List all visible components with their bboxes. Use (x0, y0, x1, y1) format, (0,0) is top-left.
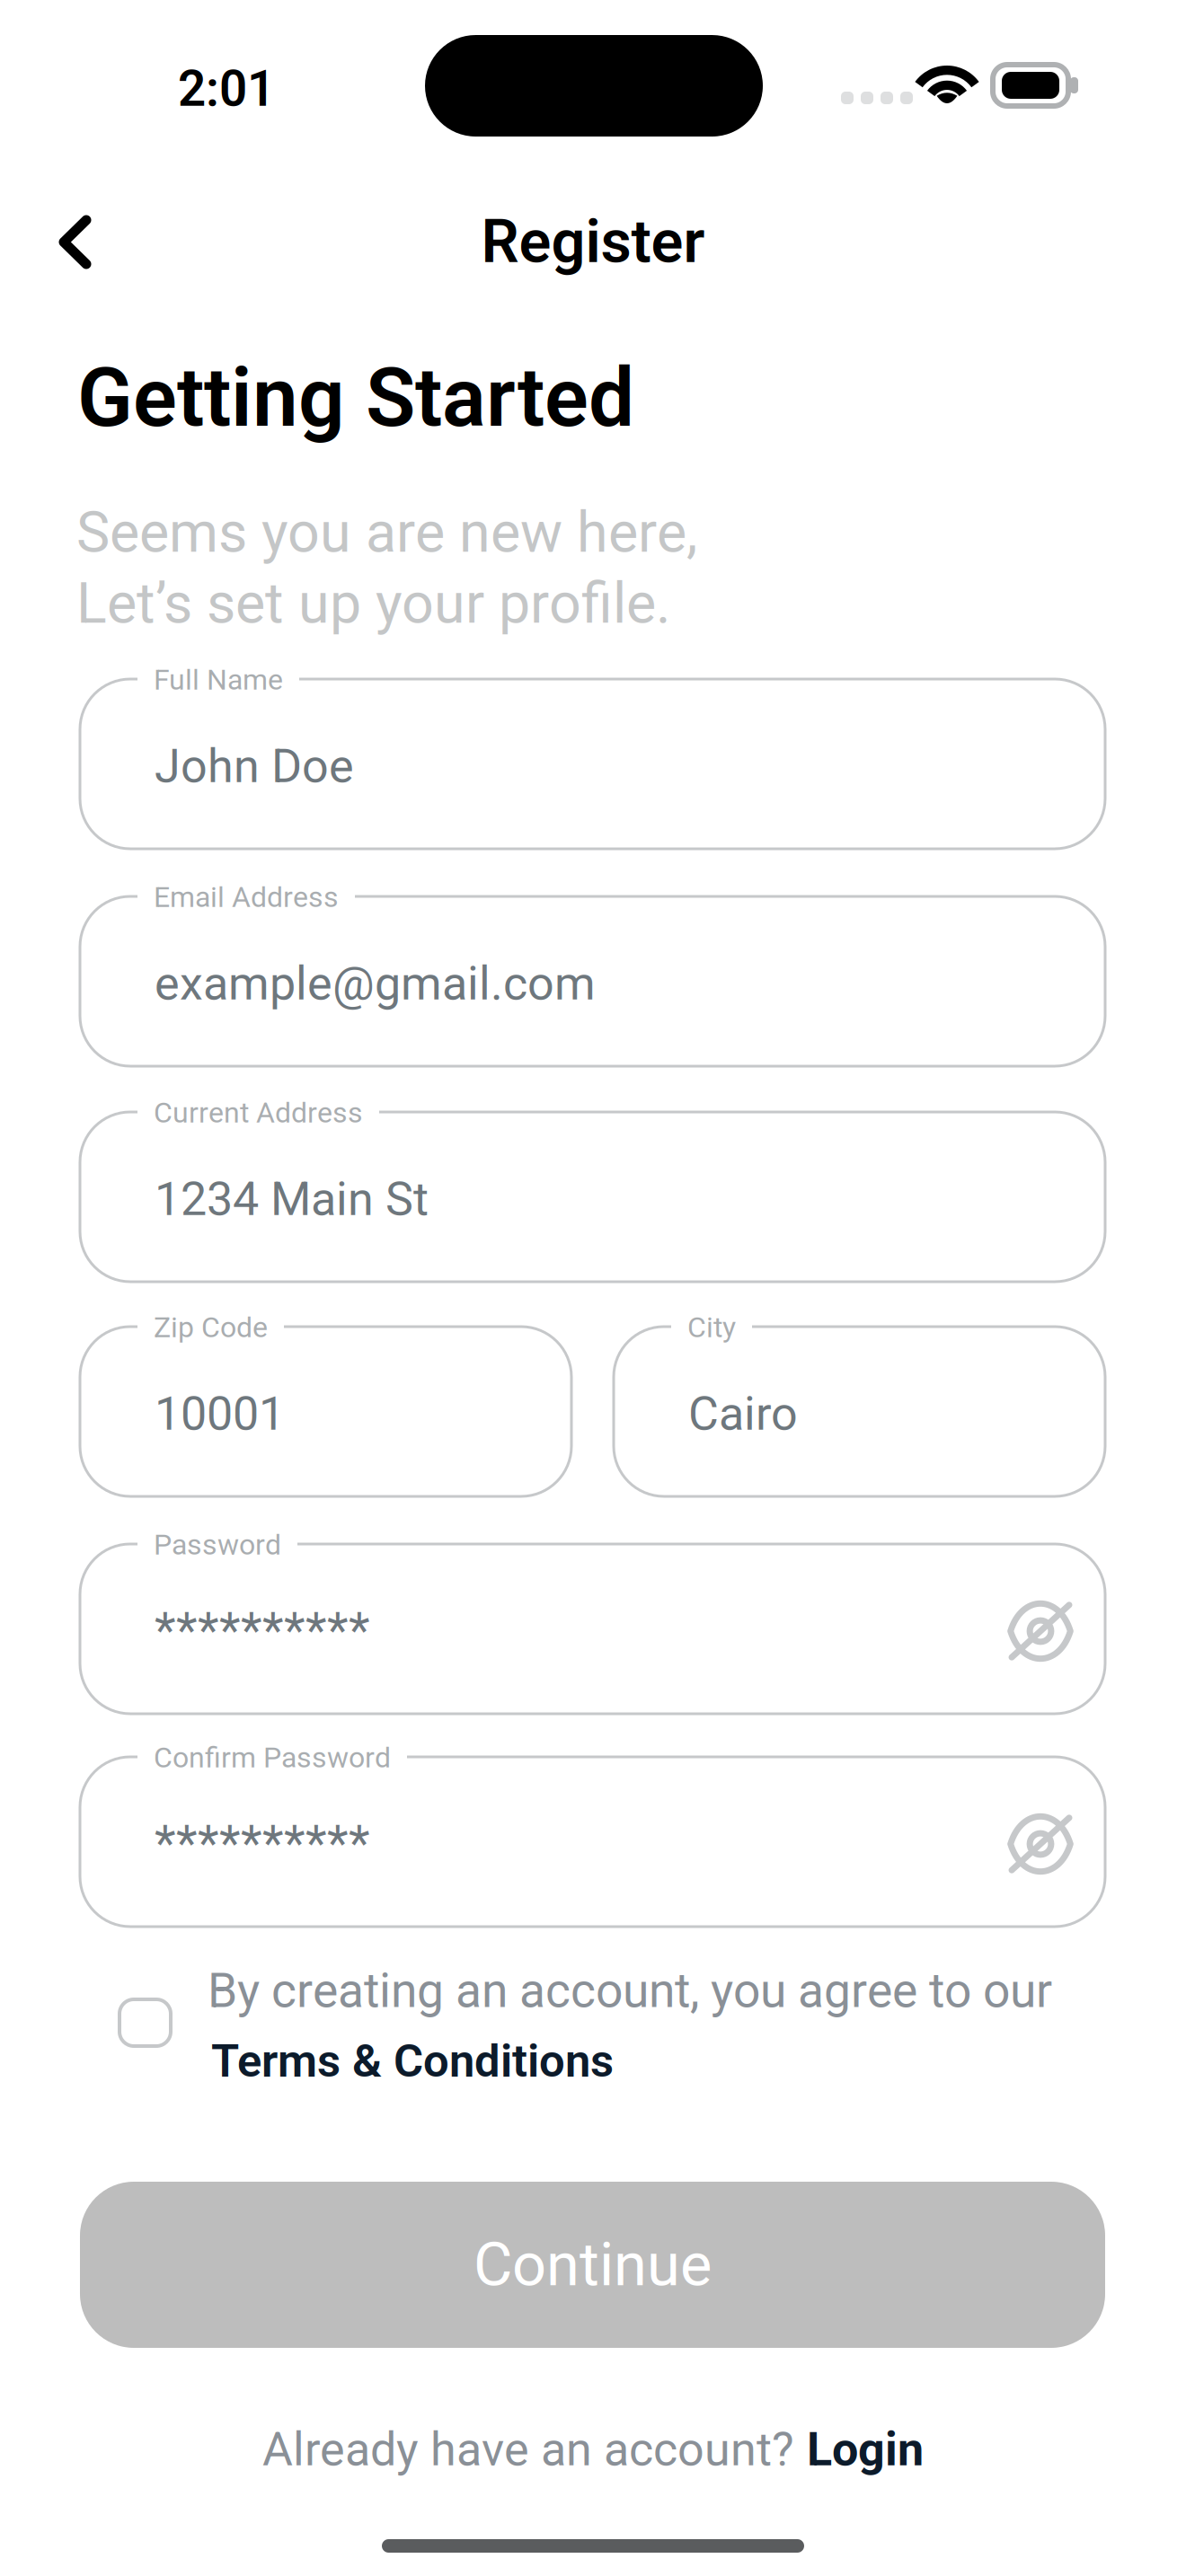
button[interactable]: Continue (80, 2182, 1105, 2348)
staticText: Already have an account? (262, 2422, 794, 2477)
staticText: John Doe (155, 739, 354, 793)
button[interactable]: Cairo (614, 1327, 1105, 1496)
staticText: example@gmail.com (155, 956, 596, 1011)
button[interactable]: Terms & Conditions (211, 2034, 614, 2088)
staticText: 10001 (155, 1386, 285, 1441)
staticText: Login (807, 2422, 924, 2477)
staticText: City (687, 1310, 736, 1344)
staticText: Seems you are new here, (76, 499, 697, 565)
staticText: Continue (474, 2230, 712, 2300)
staticText: Current Address (154, 1096, 363, 1129)
button[interactable]: John Doe (80, 679, 1105, 849)
button[interactable]: Agree to terms and conditions (119, 1999, 171, 2046)
button[interactable]: example@gmail.com (80, 896, 1105, 1066)
staticText: Zip Code (154, 1310, 268, 1344)
staticText: Password (154, 1528, 281, 1561)
staticText: ********** (155, 1602, 370, 1660)
button[interactable]: 1234 Main St (80, 1112, 1105, 1282)
staticText: 2:01 (178, 60, 275, 118)
button[interactable]: 10001 (80, 1327, 571, 1496)
staticText: By creating an account, you agree to our (208, 1963, 1052, 2019)
button[interactable]: ********** (80, 1544, 1105, 1714)
staticText: Terms & Conditions (211, 2034, 614, 2088)
staticText: Let’s set up your profile. (76, 570, 671, 636)
staticText: Getting Started (77, 350, 634, 446)
button[interactable]: ********** (80, 1757, 1105, 1927)
staticText: Full Name (154, 663, 283, 697)
button[interactable]: Back (33, 190, 117, 295)
staticText: Confirm Password (154, 1741, 391, 1774)
button[interactable]: Login (807, 2422, 924, 2477)
staticText: ********** (155, 1815, 370, 1873)
staticText: Cairo (688, 1386, 798, 1441)
staticText: 1234 Main St (155, 1172, 429, 1226)
staticText: Register (481, 206, 705, 277)
staticText: Email Address (154, 880, 339, 914)
